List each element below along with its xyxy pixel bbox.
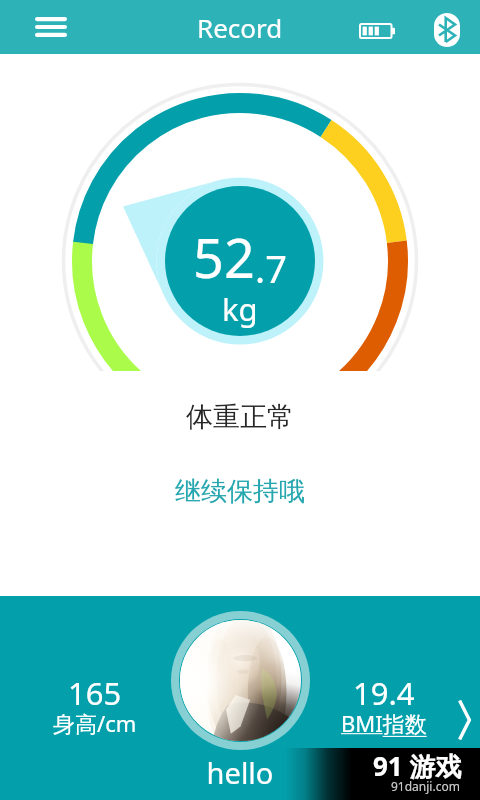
button[interactable]: Bluetooth [434,13,460,47]
staticText: kg [222,288,258,330]
button[interactable]: More details [446,690,480,750]
staticText: Record [197,10,283,45]
button[interactable]: Menu [28,4,74,50]
staticText: 19.4 [353,672,415,714]
button[interactable]: 19.4 [309,672,459,744]
staticText: 91 游戏 [373,748,462,784]
staticText: 91danji.com [391,778,460,794]
staticText: .7 [255,242,287,294]
button[interactable]: Profile photo [171,611,310,750]
button[interactable]: Battery [358,19,398,43]
button[interactable]: 165 [20,672,170,744]
staticText: 身高/cm [53,708,137,738]
staticText: 继续保持哦 [0,475,480,508]
staticText: BMI指数 [341,708,427,738]
staticText: 体重正常 [0,400,480,434]
staticText: hello [0,753,480,792]
staticText: 165 [68,672,122,714]
staticText: 52 [193,220,255,294]
